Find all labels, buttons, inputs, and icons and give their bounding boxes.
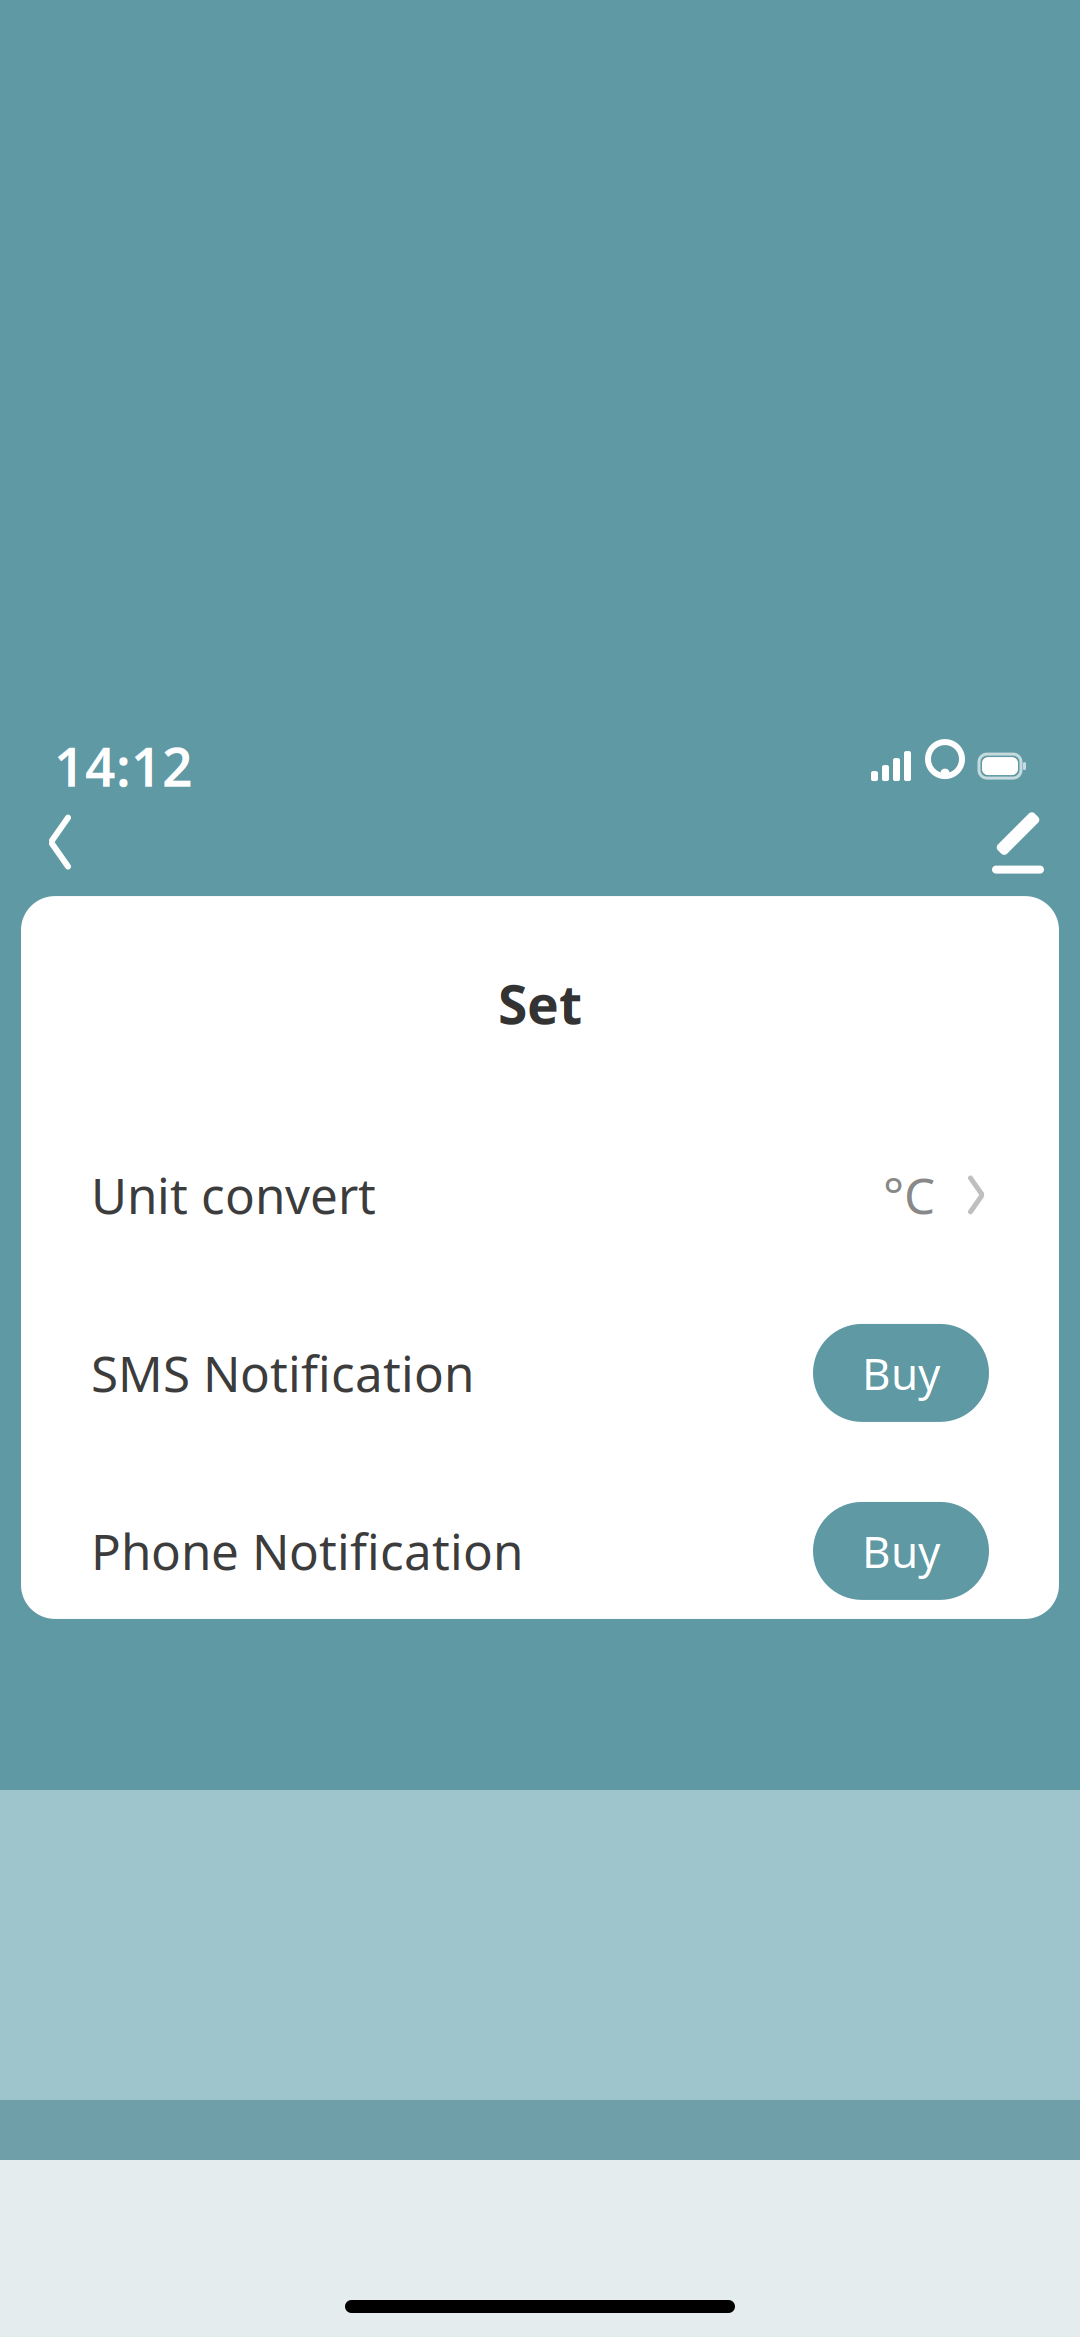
staticText: Buy	[862, 1344, 940, 1402]
staticText: Buy	[862, 1522, 940, 1580]
staticText: SMS Notification	[91, 1340, 474, 1406]
button[interactable]: Unit convert	[21, 1135, 1059, 1255]
staticText: Phone Notification	[91, 1518, 523, 1584]
staticText: Unit convert	[91, 1162, 376, 1228]
staticText: 14:12	[54, 731, 193, 801]
button[interactable]: Edit	[972, 799, 1064, 885]
button[interactable]: Back	[16, 796, 104, 888]
staticText: °C	[883, 1162, 935, 1228]
button[interactable]: Buy	[813, 1502, 989, 1600]
button[interactable]: Buy	[813, 1324, 989, 1422]
staticText: Set	[498, 968, 582, 1039]
